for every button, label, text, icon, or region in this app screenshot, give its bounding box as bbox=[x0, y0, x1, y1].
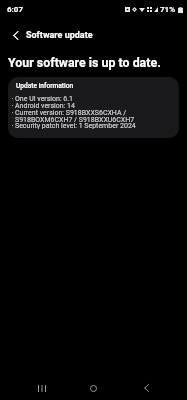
button[interactable]: Back bbox=[126, 376, 167, 400]
staticText: Current version: S918BXXS6CXHA / S918BOX… bbox=[15, 109, 135, 122]
staticText: Your software is up to date. bbox=[8, 55, 161, 70]
staticText: 71% bbox=[160, 5, 176, 14]
button[interactable]: Recent apps bbox=[21, 376, 62, 400]
staticText: Update information bbox=[16, 82, 74, 90]
button[interactable]: Navigate up bbox=[0, 24, 30, 46]
staticText: Android version: 14 bbox=[15, 102, 75, 109]
staticText: One UI version: 6.1 bbox=[15, 95, 74, 102]
button[interactable]: Home bbox=[73, 376, 114, 400]
staticText: 6:07 bbox=[7, 5, 24, 14]
staticText: Security patch level: 1 September 2024 bbox=[15, 122, 136, 129]
staticText: Software update bbox=[26, 30, 93, 41]
